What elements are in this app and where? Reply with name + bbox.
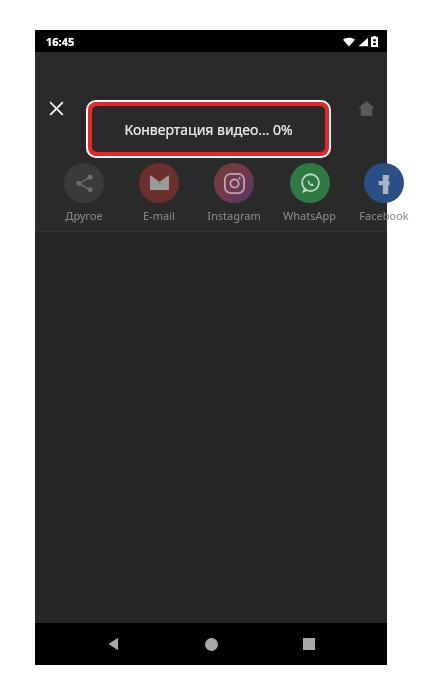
staticText: Facebook	[359, 208, 409, 223]
button[interactable]: Другое	[48, 160, 120, 230]
button[interactable]: Close	[40, 92, 72, 124]
staticText: WhatsApp	[283, 208, 336, 223]
button[interactable]: Facebook	[348, 160, 420, 230]
button[interactable]: Recent apps	[289, 624, 329, 664]
staticText: 16:45	[46, 34, 75, 49]
button[interactable]: Instagram	[198, 160, 270, 230]
button[interactable]: WhatsApp	[273, 160, 345, 230]
staticText: Конвертация видео… 0%	[124, 120, 293, 139]
button[interactable]: Конвертация видео… 0%	[92, 106, 325, 152]
staticText: Другое	[65, 208, 103, 223]
button[interactable]: Back	[93, 624, 133, 664]
staticText: E-mail	[143, 208, 175, 223]
button[interactable]: Home	[350, 92, 382, 124]
staticText: Instagram	[207, 208, 261, 223]
button[interactable]: Home	[191, 624, 231, 664]
button[interactable]: E-mail	[123, 160, 195, 230]
